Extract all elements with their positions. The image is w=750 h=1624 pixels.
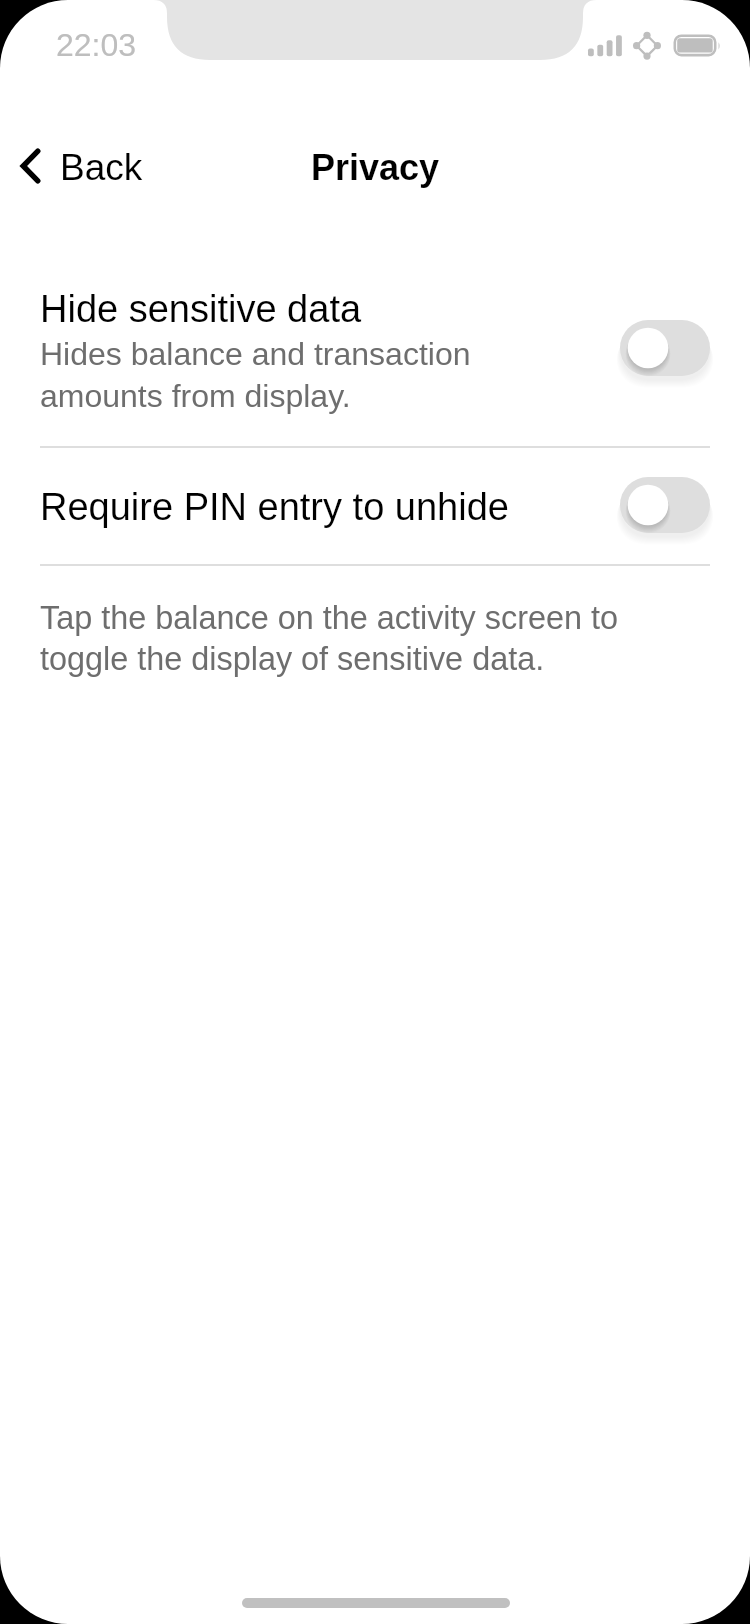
button[interactable]: Require PIN entry to unhide <box>0 448 750 564</box>
button[interactable]: Toggle switch, off <box>620 320 710 376</box>
button[interactable]: Hide sensitive data <box>0 268 750 446</box>
button[interactable]: Back <box>10 134 158 196</box>
staticText: Privacy <box>311 147 440 187</box>
staticText: Require PIN entry to unhide <box>40 486 509 528</box>
staticText: Back <box>60 147 143 188</box>
staticText: Hide sensitive data <box>40 288 362 330</box>
staticText: Hides balance and transaction amounts fr… <box>40 331 471 415</box>
other: Home indicator <box>242 1598 510 1608</box>
button[interactable]: Toggle switch, off <box>620 477 710 533</box>
staticText: 22:03 <box>56 27 137 63</box>
staticText: Tap the balance on the activity screen t… <box>40 596 618 678</box>
